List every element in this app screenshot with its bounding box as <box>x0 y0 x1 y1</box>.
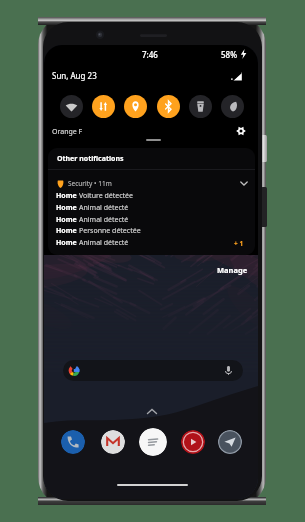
staticText: + 1 <box>234 239 244 248</box>
staticText: Other notifications <box>57 154 124 164</box>
button[interactable]: Settings <box>234 124 248 138</box>
button[interactable]: Google Chat <box>139 428 167 456</box>
staticText: Home <box>56 203 79 213</box>
staticText: 58% <box>221 49 237 60</box>
button[interactable]: Search <box>63 360 243 381</box>
staticText: Voiture détectée <box>79 191 133 201</box>
staticText: Home <box>56 191 79 201</box>
button[interactable]: Telegram <box>218 430 242 454</box>
staticText: Animal détecté <box>79 203 129 213</box>
button[interactable]: Flashlight <box>189 95 212 118</box>
staticText: Sun, Aug 23 <box>52 70 97 81</box>
button[interactable]: Location <box>124 95 147 118</box>
staticText: Home <box>56 238 79 248</box>
button[interactable]: Sound <box>92 95 115 118</box>
button[interactable]: Dark theme <box>221 95 244 118</box>
button[interactable]: Security • 11m <box>48 170 255 255</box>
staticText: Animal détecté <box>79 215 129 225</box>
staticText: Home <box>56 215 79 225</box>
staticText: Manage <box>217 265 248 275</box>
button[interactable]: Wi-Fi <box>60 95 83 118</box>
staticText: Security • 11m <box>68 179 112 188</box>
staticText: Personne détectée <box>79 226 141 236</box>
staticText: Home <box>56 226 79 236</box>
staticText: Animal détecté <box>79 238 129 248</box>
staticText: Orange F <box>52 127 83 137</box>
button[interactable]: Other notifications <box>48 148 255 169</box>
button[interactable]: Phone <box>61 430 85 454</box>
button[interactable]: Gmail <box>101 430 125 454</box>
button[interactable]: Manage <box>217 265 248 275</box>
button[interactable]: YouTube Music <box>181 430 205 454</box>
button[interactable]: Bluetooth <box>157 95 180 118</box>
staticText: 7:46 <box>142 49 158 60</box>
